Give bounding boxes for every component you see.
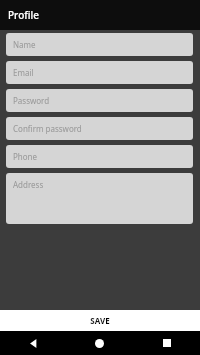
button[interactable]: Phone [6, 145, 193, 168]
staticText: Name [13, 39, 36, 50]
button[interactable]: Name [6, 33, 193, 56]
staticText: Email [13, 67, 34, 78]
button[interactable]: Password [6, 89, 193, 112]
staticText: SAVE [90, 315, 110, 326]
button[interactable]: Confirm password [6, 117, 193, 140]
button[interactable]: Email [6, 61, 193, 84]
staticText: Profile [8, 8, 39, 22]
staticText: Confirm password [13, 123, 82, 134]
button[interactable]: SAVE [0, 310, 200, 331]
staticText: Address [13, 179, 44, 190]
staticText: Phone [13, 151, 38, 162]
staticText: Password [13, 95, 50, 106]
button[interactable]: Back [0, 331, 66, 355]
button[interactable]: Home [66, 331, 133, 355]
button[interactable]: Recent apps [133, 331, 200, 355]
button[interactable]: Address [6, 173, 193, 224]
